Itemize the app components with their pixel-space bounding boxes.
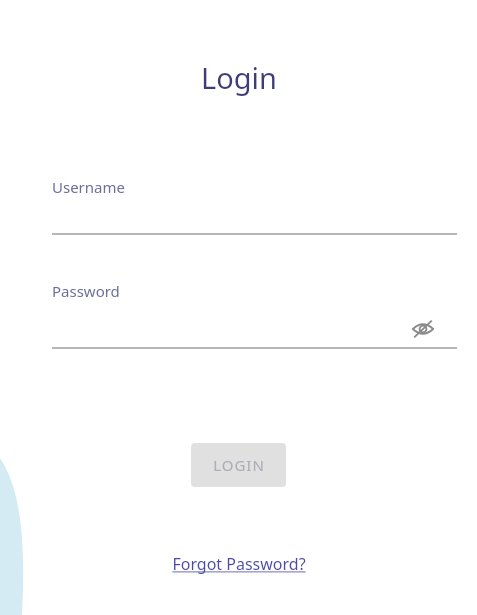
staticText: Forgot Password? <box>172 553 306 575</box>
button[interactable]: LOGIN <box>191 443 286 487</box>
button[interactable]: Show password <box>409 315 437 343</box>
staticText: Username <box>52 177 125 197</box>
button[interactable]: Forgot Password? <box>166 549 312 579</box>
staticText: Login <box>201 58 277 97</box>
staticText: Password <box>52 281 120 301</box>
staticText: LOGIN <box>213 455 265 475</box>
